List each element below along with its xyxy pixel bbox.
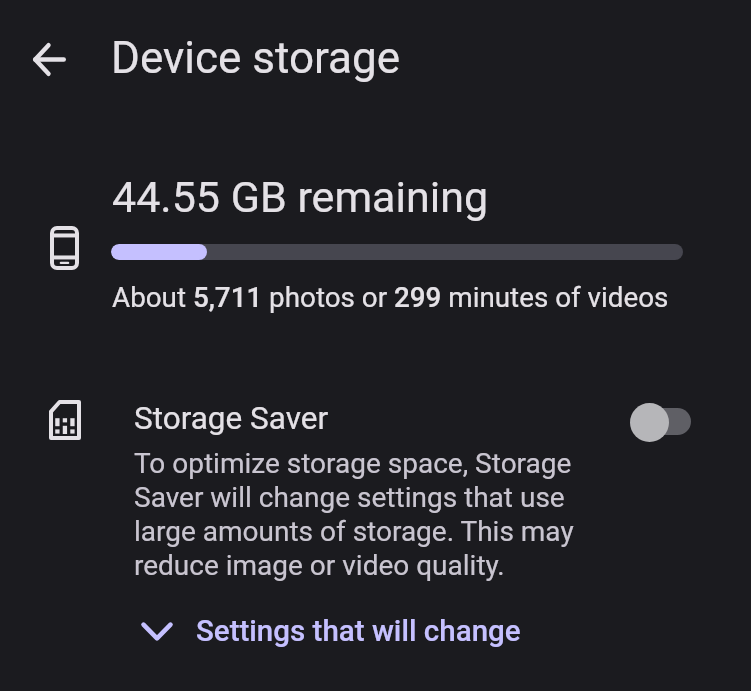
button[interactable]: Storage Saver [0, 386, 751, 592]
button[interactable]: Back [21, 31, 77, 87]
staticText: To optimize storage space, Storage Saver… [134, 447, 604, 582]
staticText: Settings that will change [196, 614, 521, 649]
staticText: Device storage [111, 32, 401, 84]
staticText: 44.55 GB remaining [112, 172, 489, 222]
staticText: About 5,711 photos or 299 minutes of vid… [112, 281, 669, 314]
button[interactable]: Settings that will change [134, 606, 529, 657]
staticText: Storage Saver [134, 400, 329, 437]
button[interactable]: Storage Saver, off [618, 390, 686, 454]
